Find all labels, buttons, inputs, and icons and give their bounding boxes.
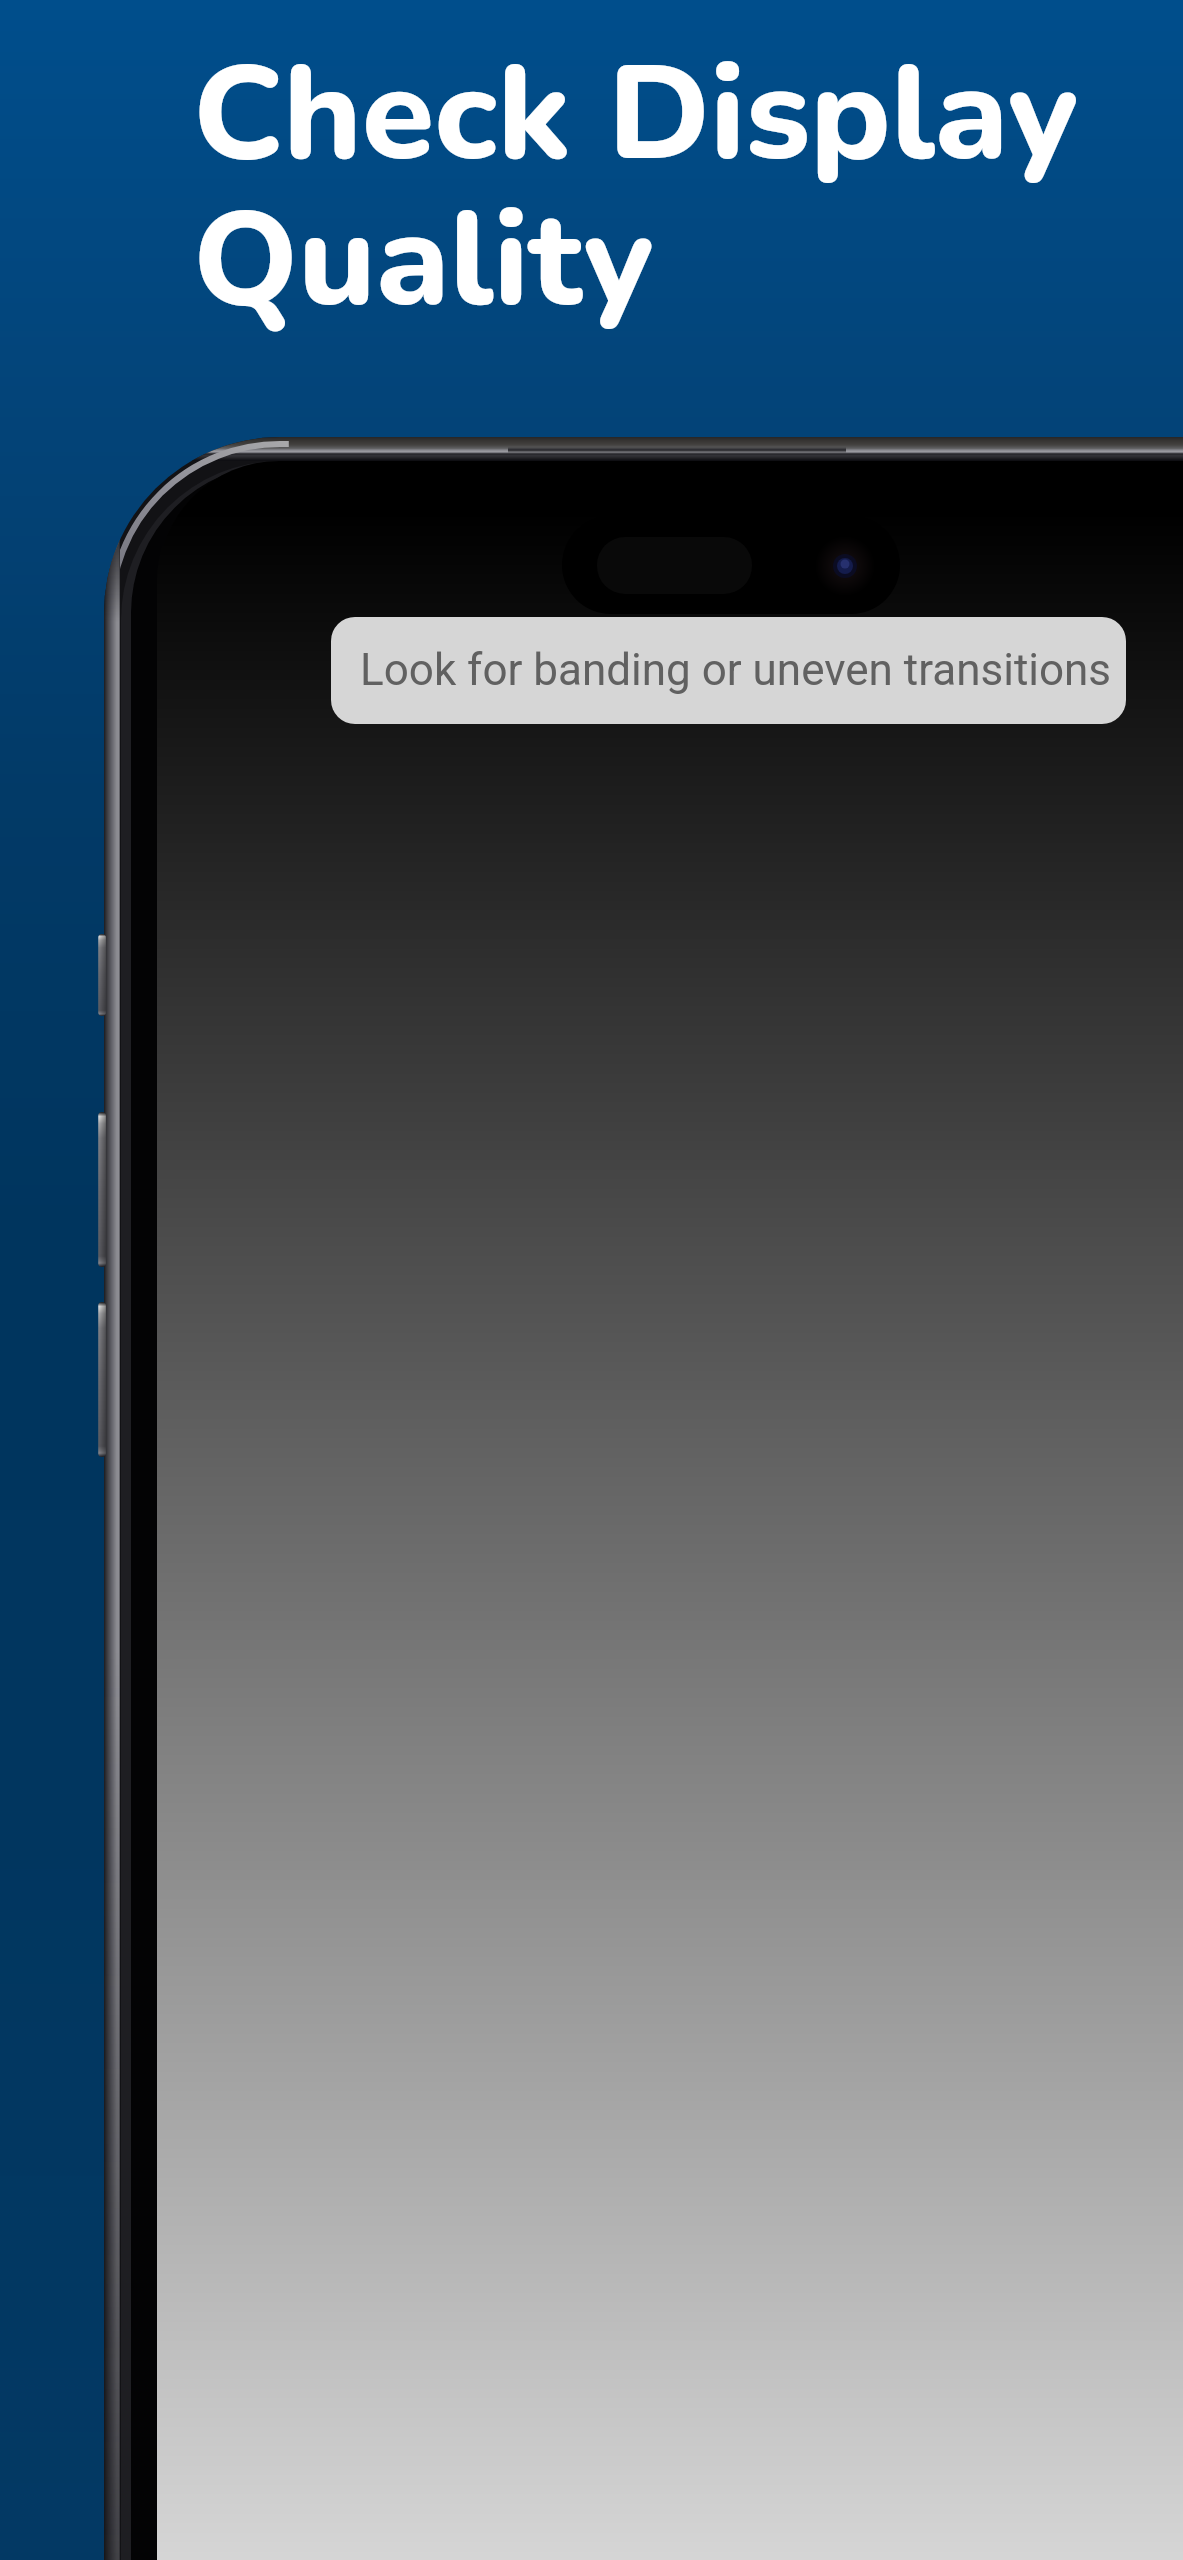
staticText: Look for banding or uneven transitions xyxy=(360,644,1112,696)
button[interactable]: Check Display Quality xyxy=(193,25,1103,351)
button[interactable]: Look for banding or uneven transitions xyxy=(331,617,1126,724)
other: Phone showing a greyscale gradient test … xyxy=(0,0,1183,2560)
staticText: Check Display Quality xyxy=(193,25,1103,351)
